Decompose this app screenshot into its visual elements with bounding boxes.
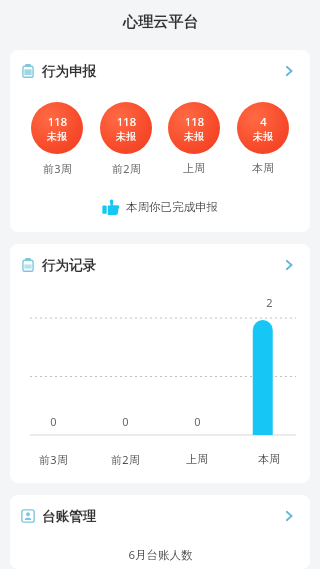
staticText: 本周你已完成申报 <box>126 200 218 214</box>
staticText: 未报 <box>116 130 136 143</box>
staticText: 0 <box>194 414 201 429</box>
staticText: 心理云平台 <box>123 13 198 32</box>
staticText: 前2周 <box>112 161 141 176</box>
button[interactable]: 行为记录 <box>10 244 310 286</box>
staticText: 台账管理 <box>42 508 96 525</box>
staticText: 上周 <box>183 161 205 175</box>
staticText: 本周 <box>252 161 274 175</box>
other: 查看行为记录 <box>279 255 299 275</box>
staticText: 0 <box>122 414 129 429</box>
staticText: 0 <box>50 414 57 429</box>
staticText: 6月台账人数 <box>128 547 193 563</box>
other: 查看行为申报 <box>279 61 299 81</box>
staticText: 118 <box>185 114 204 129</box>
button[interactable]: 台账管理 <box>10 495 310 537</box>
button[interactable]: 118 <box>100 102 152 154</box>
staticText: 行为申报 <box>42 63 96 80</box>
staticText: 上周 <box>186 452 208 466</box>
staticText: 本周 <box>258 452 280 466</box>
staticText: 118 <box>48 114 67 129</box>
staticText: 前2周 <box>111 452 140 467</box>
other: 查看台账管理 <box>279 506 299 526</box>
staticText: 行为记录 <box>42 257 96 274</box>
staticText: 未报 <box>47 130 67 143</box>
staticText: 前3周 <box>43 161 72 176</box>
staticText: 4 <box>260 114 267 129</box>
staticText: 118 <box>117 114 136 129</box>
button[interactable]: 118 <box>168 102 220 154</box>
staticText: 未报 <box>184 130 204 143</box>
staticText: 2 <box>266 295 273 310</box>
button[interactable]: 行为申报 <box>10 50 310 92</box>
button[interactable]: 118 <box>31 102 83 154</box>
staticText: 未报 <box>253 130 273 143</box>
staticText: 前3周 <box>39 452 68 467</box>
button[interactable]: 4 <box>237 102 289 154</box>
